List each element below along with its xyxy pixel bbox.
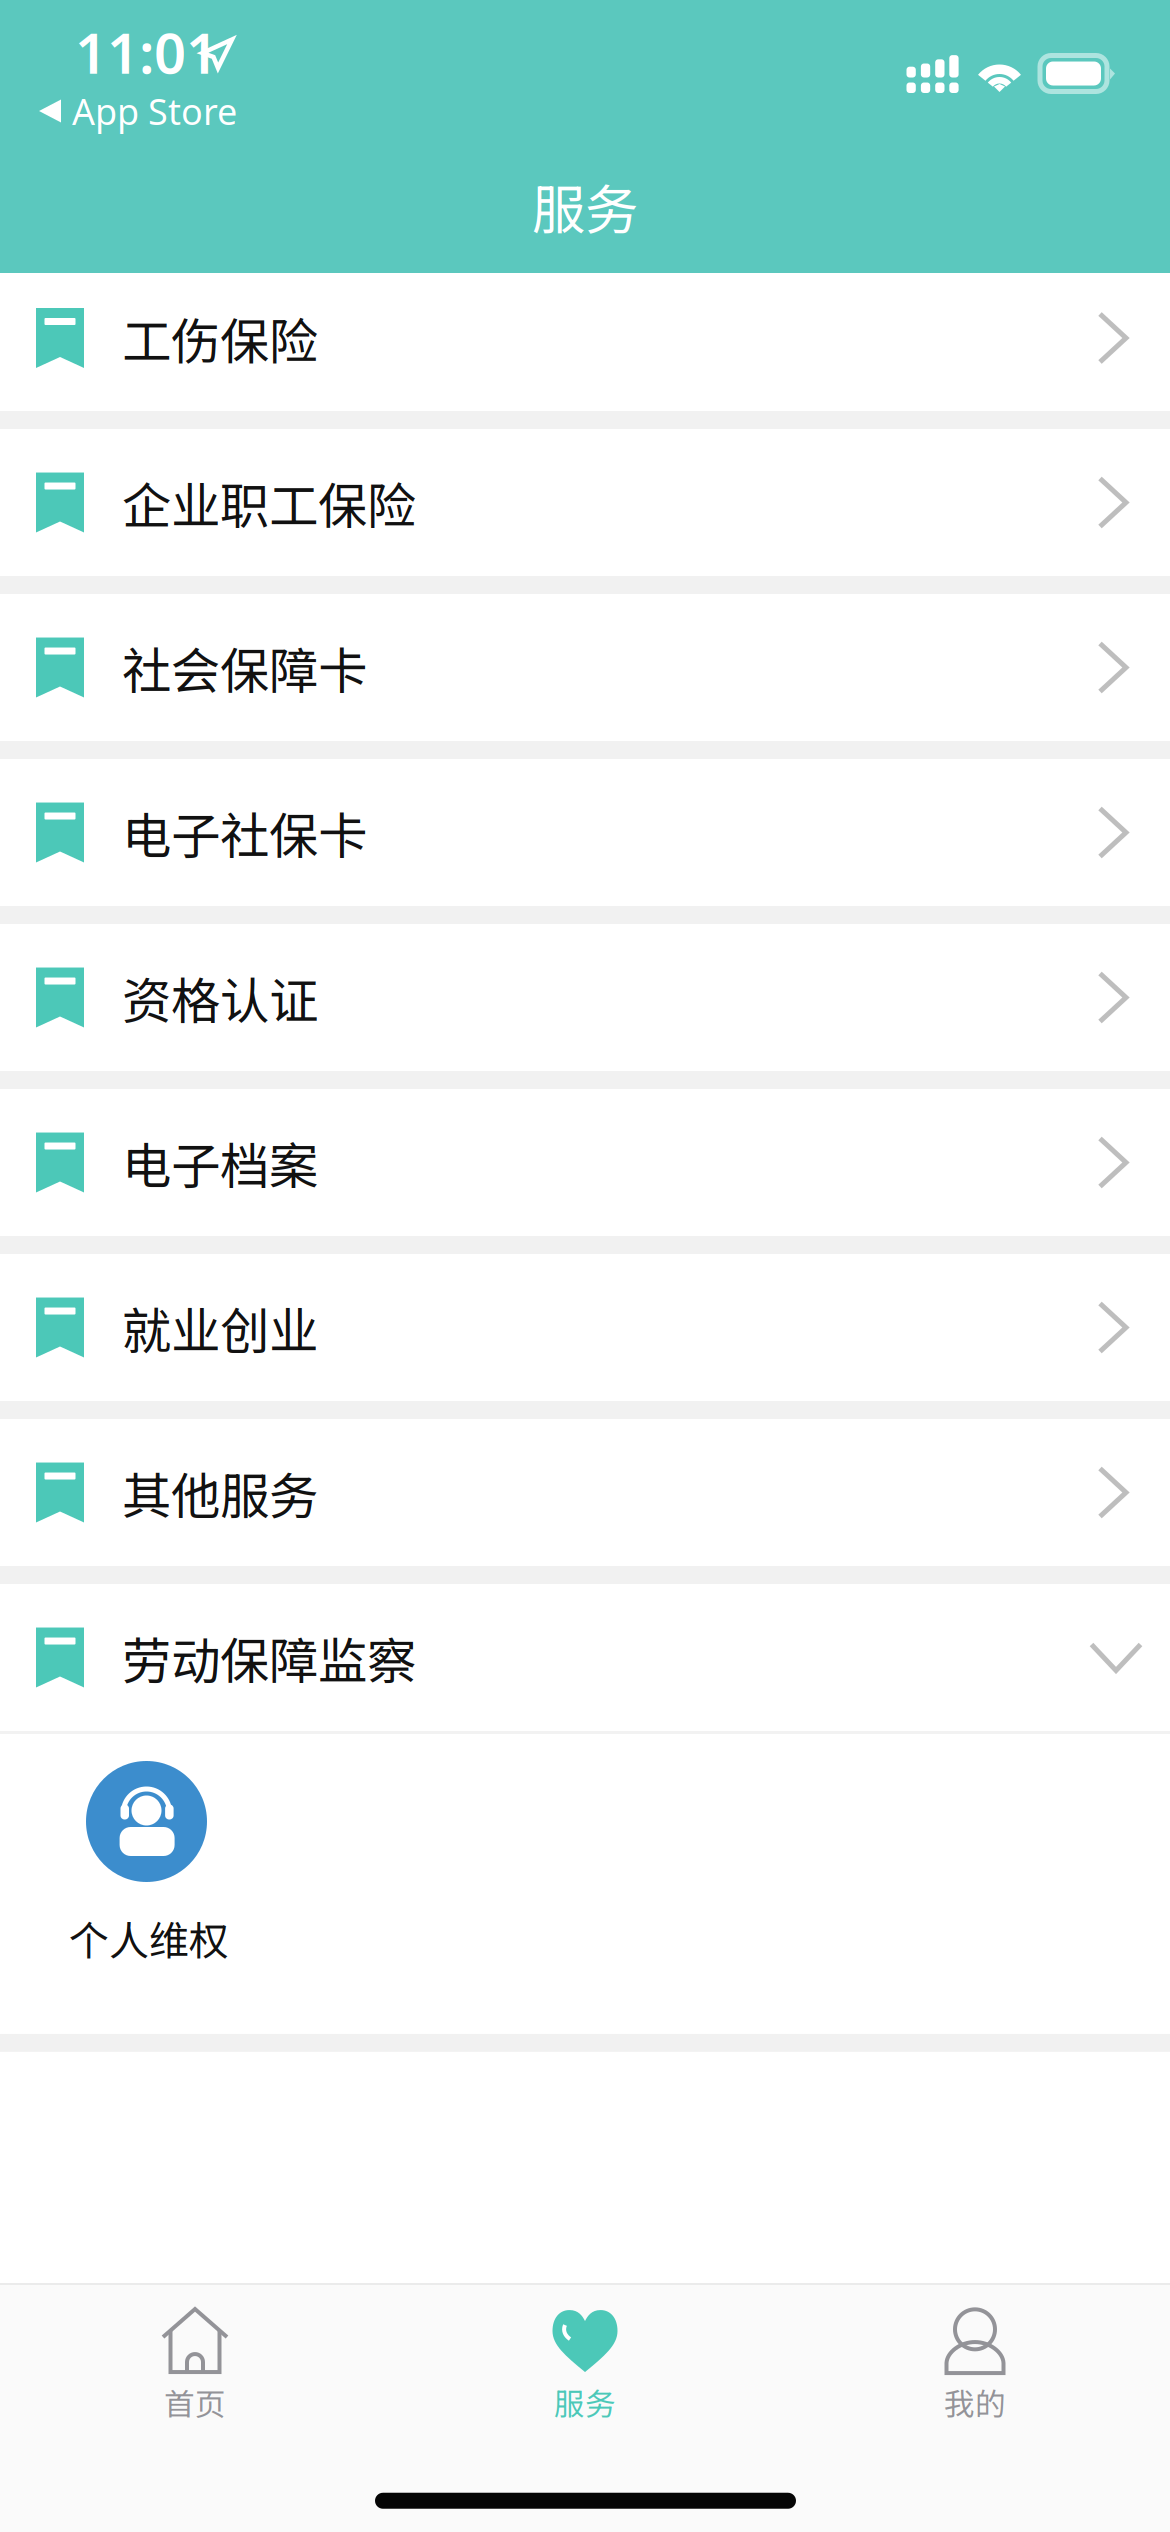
button[interactable]: 资格认证 — [0, 924, 1170, 1071]
staticText: 其他服务 — [122, 1457, 318, 1528]
button[interactable]: 首页 — [0, 2285, 390, 2424]
staticText: 服务 — [554, 2380, 616, 2424]
button[interactable]: 企业职工保险 — [0, 429, 1170, 576]
staticText: App Store — [72, 87, 237, 135]
button[interactable]: 电子社保卡 — [0, 759, 1170, 906]
button[interactable]: 电子档案 — [0, 1089, 1170, 1236]
button[interactable]: 劳动保障监察 — [0, 1584, 1170, 1731]
button[interactable]: 个人维权 — [0, 1734, 269, 2034]
staticText: 个人维权 — [69, 1909, 229, 1967]
staticText: 服务 — [532, 167, 638, 245]
button[interactable]: 我的 — [780, 2285, 1170, 2424]
button[interactable]: 社会保障卡 — [0, 594, 1170, 741]
staticText: 我的 — [944, 2380, 1006, 2424]
staticText: 工伤保险 — [122, 302, 318, 374]
button[interactable]: 服务 — [390, 2285, 780, 2424]
staticText: 资格认证 — [122, 962, 318, 1033]
staticText: 社会保障卡 — [122, 632, 367, 703]
staticText: 就业创业 — [122, 1292, 318, 1363]
button[interactable]: 就业创业 — [0, 1254, 1170, 1401]
staticText: 11:01 — [75, 15, 218, 89]
staticText: 电子档案 — [122, 1127, 318, 1198]
staticText: 劳动保障监察 — [122, 1622, 416, 1693]
button[interactable]: App Store — [0, 80, 261, 142]
staticText: 首页 — [164, 2380, 226, 2424]
staticText: 企业职工保险 — [122, 467, 416, 538]
button[interactable]: 工伤保险 — [0, 273, 1170, 411]
button[interactable]: 其他服务 — [0, 1419, 1170, 1566]
staticText: 电子社保卡 — [122, 797, 367, 868]
